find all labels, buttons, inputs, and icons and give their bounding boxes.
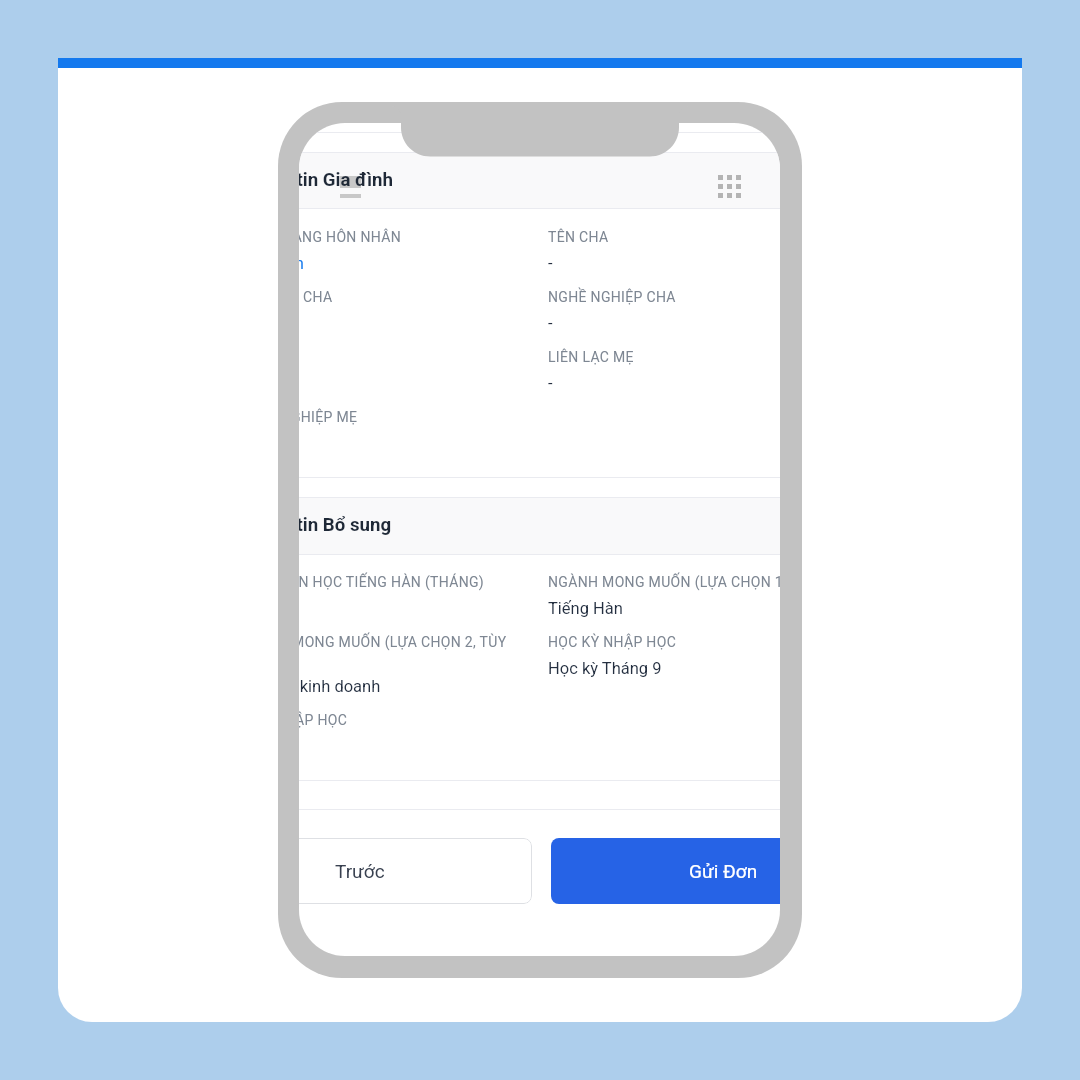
- staticText: NGHỀ NGHIỆP MẸ: [299, 409, 358, 425]
- staticText: -: [548, 314, 553, 333]
- button[interactable]: Gửi Đơn: [551, 838, 780, 904]
- staticText: TÌNH TRẠNG HÔN NHÂN: [299, 229, 402, 245]
- staticText: -: [548, 254, 553, 273]
- button[interactable]: Trước: [299, 838, 532, 904]
- staticText: HỌC KỲ NHẬP HỌC: [548, 634, 677, 650]
- staticText: Thông tin Bổ sung: [299, 514, 392, 536]
- staticText: THỜI GIAN HỌC TIẾNG HÀN (THÁNG): [299, 574, 485, 590]
- staticText: TÊN CHA: [548, 229, 609, 245]
- staticText: NGHỀ NGHIỆP CHA: [548, 289, 676, 305]
- staticText: Học kỳ Tháng 9: [548, 659, 662, 678]
- staticText: Độc thân: [299, 254, 304, 273]
- staticText: Gửi Đơn: [689, 860, 758, 882]
- staticText: Tiếng Hàn: [548, 599, 623, 618]
- staticText: NĂM NHẬP HỌC: [299, 712, 348, 728]
- staticText: Trước: [335, 860, 385, 882]
- staticText: LIÊN LẠC CHA: [299, 289, 333, 305]
- staticText: NGÀNH MONG MUỐN (LỰA CHỌN 1): [548, 574, 780, 590]
- button[interactable]: Apps: [718, 175, 741, 198]
- staticText: NGÀNH MONG MUỐN (LỰA CHỌN 2, TÙY CHỌN): [299, 634, 538, 668]
- staticText: Thông tin Gia đình: [299, 169, 393, 191]
- staticText: LIÊN LẠC MẸ: [548, 349, 634, 365]
- staticText: -: [548, 374, 553, 393]
- staticText: Quản trị kinh doanh: [299, 677, 381, 696]
